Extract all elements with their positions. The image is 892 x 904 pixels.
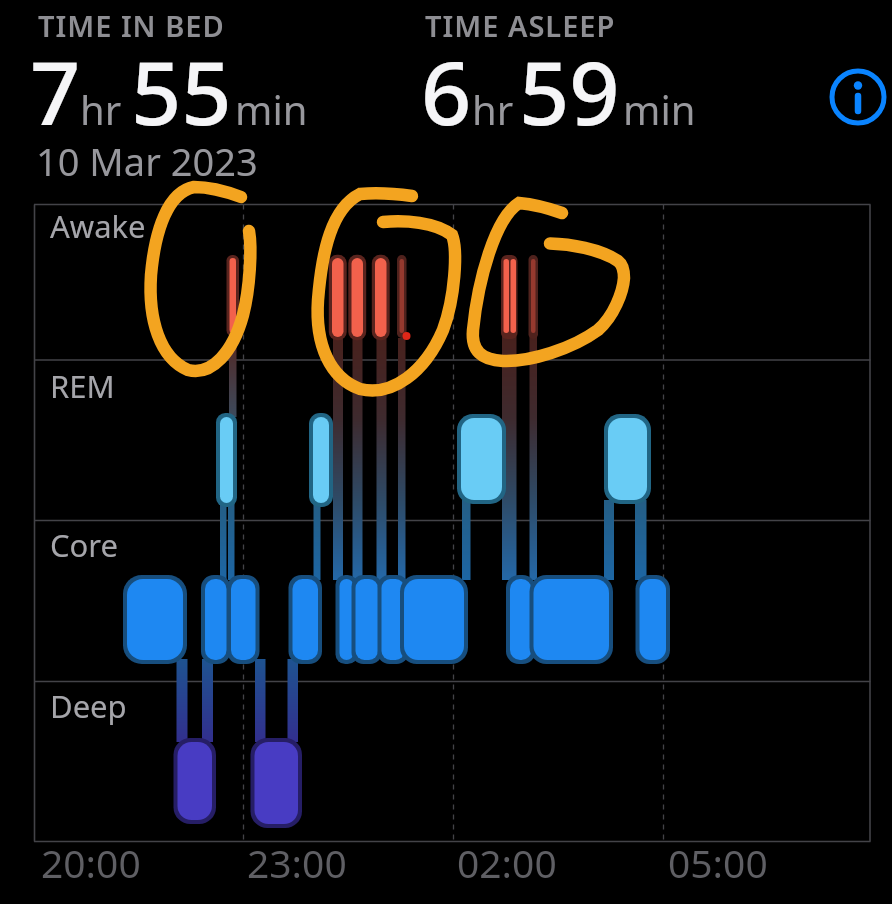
staticText: 6 (421, 31, 472, 151)
staticText: 10 Mar 2023 (36, 135, 258, 187)
staticText: 55 (131, 31, 232, 151)
staticText: 02:00 (457, 836, 557, 889)
staticText: TIME IN BED (38, 6, 225, 45)
staticText: 23:00 (247, 836, 347, 889)
staticText: 7 (30, 31, 81, 151)
staticText: min (235, 82, 308, 136)
staticText: Awake (50, 205, 146, 247)
staticText: Core (50, 524, 119, 566)
staticText: hr (472, 82, 514, 136)
staticText: 20:00 (41, 836, 141, 889)
staticText: min (623, 82, 696, 136)
staticText: Deep (50, 685, 127, 727)
button[interactable] (827, 66, 889, 128)
staticText: 59 (519, 31, 620, 151)
staticText: REM (50, 365, 115, 407)
staticText: hr (80, 82, 122, 136)
staticText: 05:00 (668, 836, 768, 889)
staticText: TIME ASLEEP (425, 6, 616, 45)
